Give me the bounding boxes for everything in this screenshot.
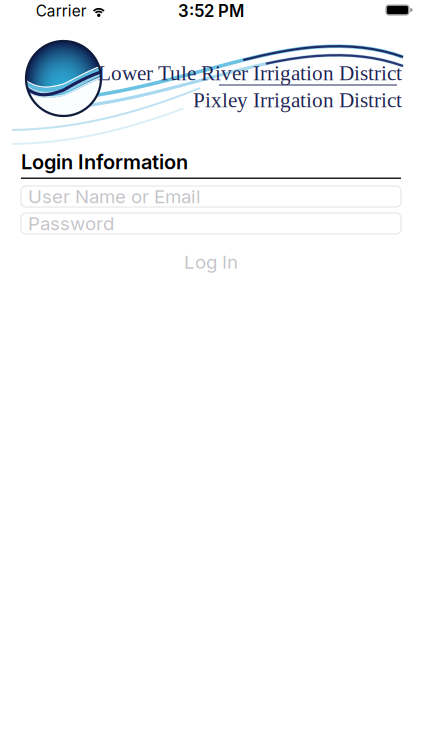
- staticText: Log In: [184, 251, 238, 273]
- staticText: Lower Tule River Irrigation District: [98, 61, 402, 85]
- staticText: Pixley Irrigation District: [193, 88, 402, 112]
- button[interactable]: Log In: [21, 245, 401, 279]
- staticText: Carrier: [36, 2, 87, 20]
- staticText: Login Information: [21, 150, 188, 174]
- staticText: 3:52 PM: [178, 1, 244, 21]
- staticText: User Name or Email: [28, 185, 201, 208]
- staticText: Password: [28, 212, 114, 235]
